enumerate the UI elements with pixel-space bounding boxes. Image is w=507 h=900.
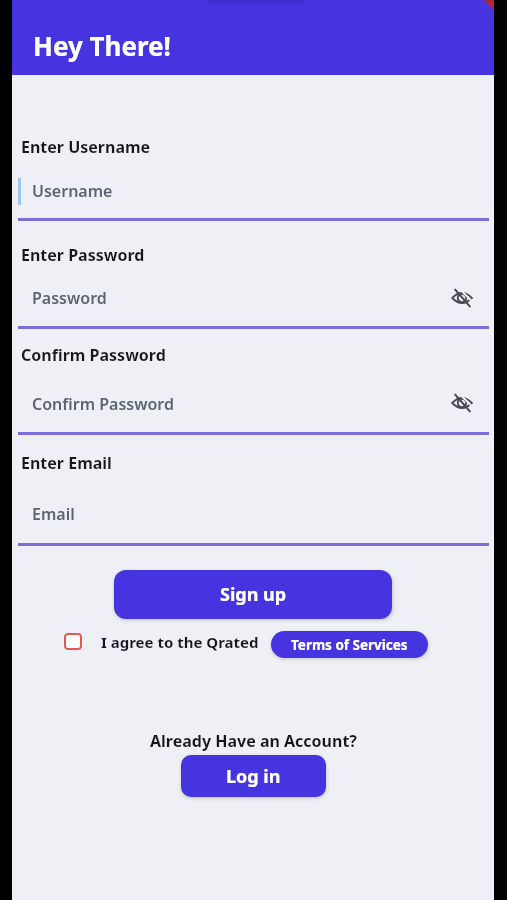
- staticText: Email: [32, 503, 75, 525]
- staticText: Log in: [226, 764, 281, 789]
- staticText: Hey There!: [33, 28, 171, 62]
- button[interactable]: [64, 633, 82, 650]
- staticText: Password: [32, 287, 107, 309]
- staticText: Terms of Services: [291, 636, 408, 654]
- button[interactable]: Confirm Password: [32, 392, 352, 416]
- staticText: Already Have an Account?: [150, 730, 357, 752]
- button[interactable]: [450, 391, 474, 415]
- button[interactable]: Email: [32, 502, 352, 526]
- staticText: Sign up: [220, 582, 287, 607]
- staticText: I agree to the Qrated: [101, 632, 259, 652]
- staticText: Enter Username: [21, 136, 151, 158]
- button[interactable]: Terms of Services: [271, 631, 428, 658]
- staticText: Confirm Password: [21, 344, 166, 366]
- button[interactable]: [450, 286, 474, 310]
- button[interactable]: Sign up: [114, 570, 392, 619]
- button[interactable]: Log in: [181, 755, 326, 797]
- staticText: Enter Password: [21, 244, 145, 266]
- staticText: Username: [32, 180, 113, 202]
- button[interactable]: Password: [32, 286, 352, 310]
- staticText: Confirm Password: [32, 393, 174, 415]
- staticText: Enter Email: [21, 452, 112, 474]
- button[interactable]: Username: [32, 179, 352, 203]
